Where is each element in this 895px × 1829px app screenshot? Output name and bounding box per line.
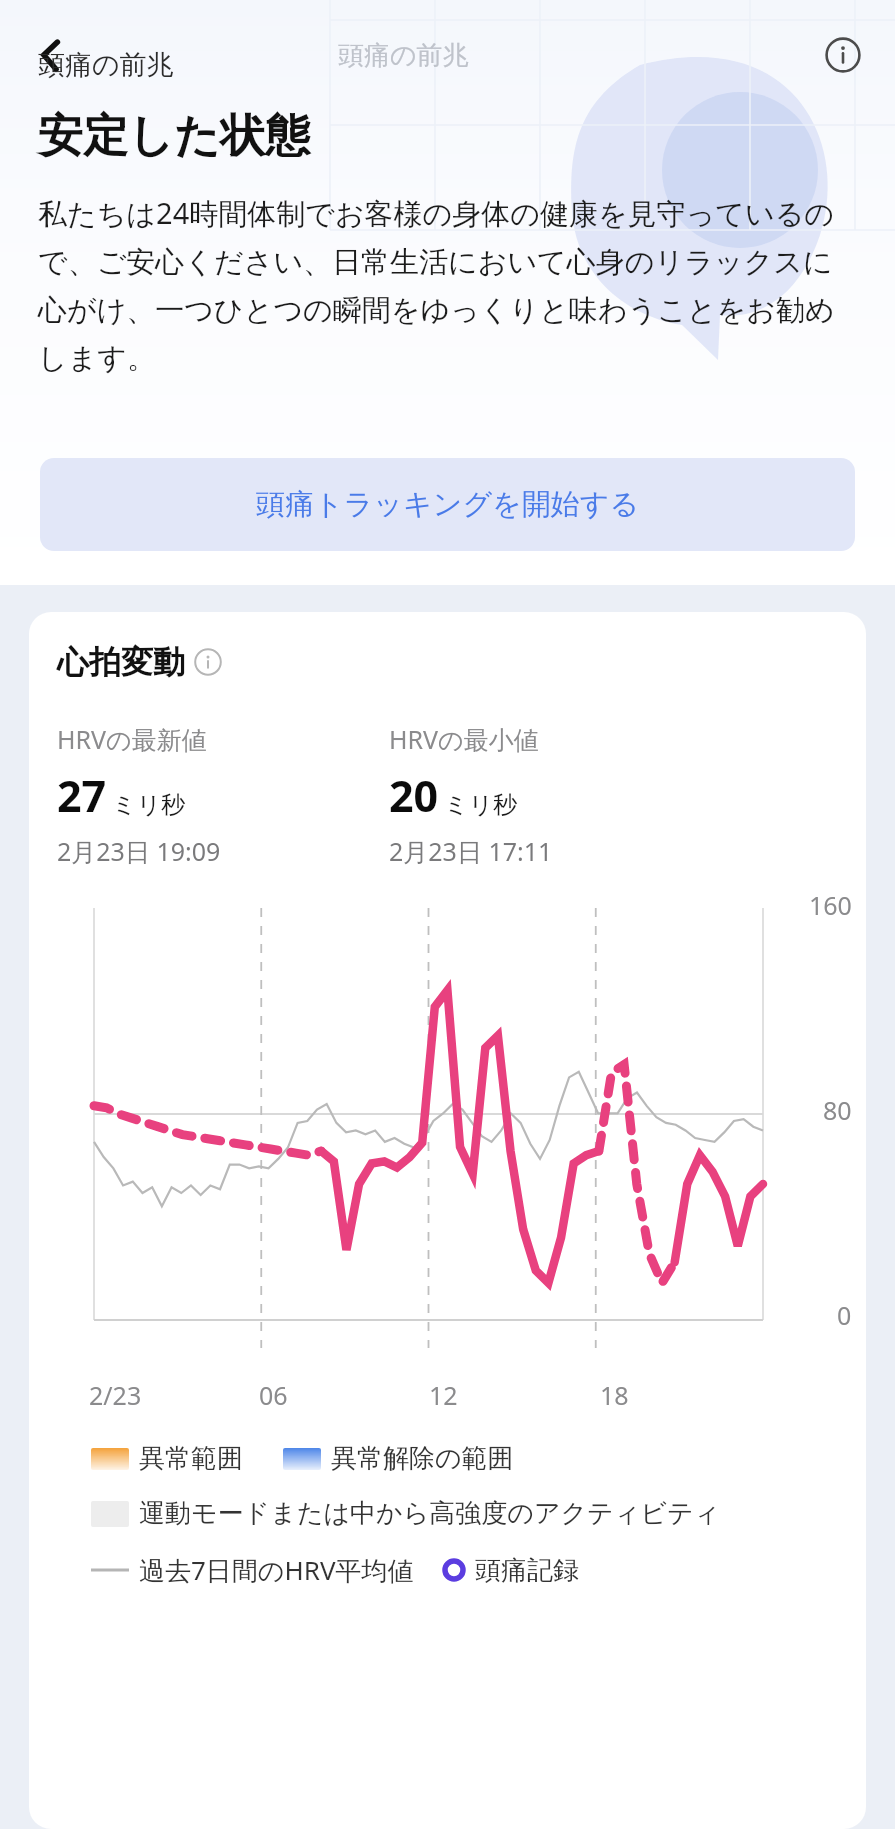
staticText: 頭痛の前兆 bbox=[38, 48, 174, 82]
staticText: 異常解除の範囲 bbox=[331, 1442, 514, 1475]
staticText: 頭痛の前兆 bbox=[338, 39, 469, 72]
staticText: 2/23 bbox=[89, 1378, 259, 1412]
staticText: ミリ秒 bbox=[444, 790, 518, 820]
staticText: 18 bbox=[600, 1378, 771, 1412]
staticText: 心拍変動 bbox=[57, 642, 185, 682]
staticText: 運動モードまたは中から高強度のアクティビティ bbox=[139, 1497, 721, 1530]
staticText: ミリ秒 bbox=[112, 790, 186, 820]
staticText: 2月23日 19:09 bbox=[57, 834, 221, 868]
staticText: 頭痛記録 bbox=[475, 1554, 579, 1587]
button[interactable]: 心拍変動 bbox=[57, 642, 222, 682]
button[interactable]: Information bbox=[817, 29, 869, 81]
staticText: 安定した状態 bbox=[38, 108, 311, 165]
staticText: 頭痛トラッキングを開始する bbox=[256, 486, 640, 523]
staticText: 06 bbox=[259, 1378, 429, 1412]
staticText: 0 bbox=[837, 1298, 852, 1332]
button[interactable]: Back bbox=[24, 27, 80, 83]
staticText: 160 bbox=[809, 888, 852, 922]
staticText: HRVの最新値 bbox=[57, 722, 207, 756]
staticText: 12 bbox=[429, 1378, 600, 1412]
staticText: 80 bbox=[823, 1093, 852, 1127]
staticText: 27 bbox=[57, 766, 107, 825]
staticText: 異常範囲 bbox=[139, 1442, 243, 1475]
staticText: HRVの最小値 bbox=[389, 722, 539, 756]
button[interactable]: 頭痛トラッキングを開始する bbox=[40, 458, 855, 551]
staticText: 20 bbox=[389, 766, 439, 825]
staticText: 私たちは24時間体制でお客様の身体の健康を見守っているので、ご安心ください、日常… bbox=[38, 193, 861, 376]
staticText: 2月23日 17:11 bbox=[389, 834, 553, 868]
staticText: 過去7日間のHRV平均値 bbox=[139, 1552, 414, 1588]
